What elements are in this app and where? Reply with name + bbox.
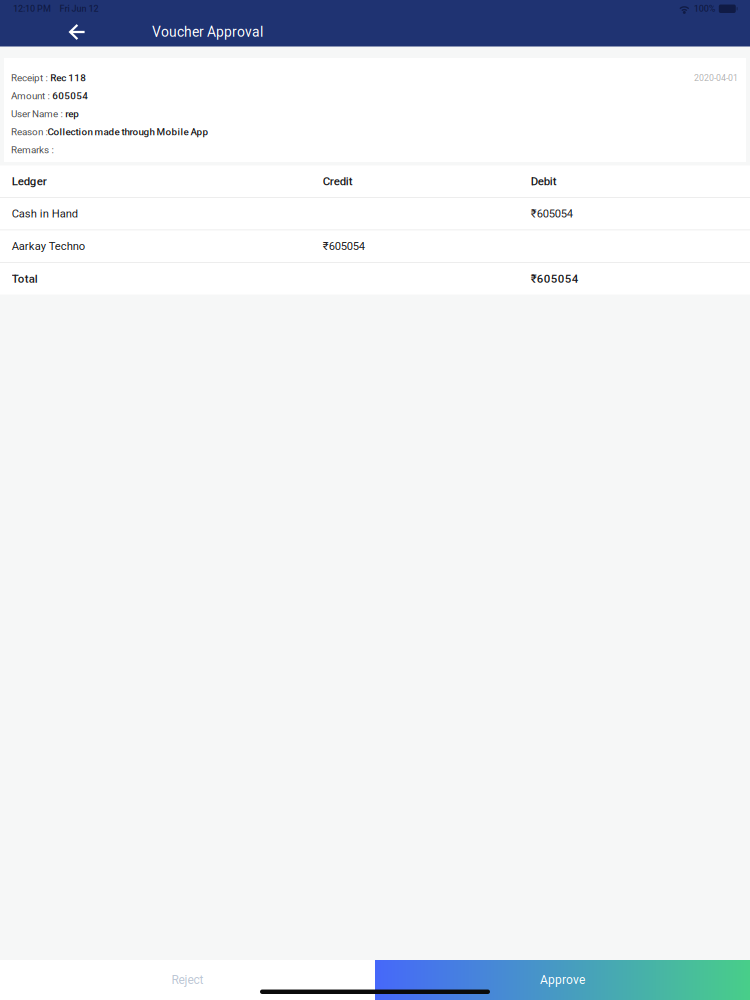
staticText: ₹605054	[323, 240, 365, 253]
staticText: :	[45, 72, 47, 84]
staticText: Credit	[323, 174, 353, 188]
staticText: ₹605054	[531, 272, 579, 285]
staticText: Fri Jun 12	[59, 3, 98, 14]
staticText: Total	[12, 272, 38, 285]
staticText: 100%	[694, 3, 716, 14]
staticText: User Name	[11, 108, 58, 120]
button[interactable]: Back	[55, 17, 99, 46]
staticText: Approve	[540, 973, 585, 987]
staticText: Debit	[531, 174, 557, 188]
staticText: :	[45, 126, 47, 138]
staticText: Amount	[11, 90, 45, 102]
staticText: 12:10 PM	[13, 3, 51, 14]
staticText: ₹605054	[531, 207, 573, 220]
staticText: Ledger	[12, 174, 47, 188]
staticText: Reason	[11, 126, 43, 138]
staticText: :	[60, 108, 62, 120]
staticText: 605054	[52, 90, 88, 102]
staticText: Rec 118	[50, 72, 86, 84]
staticText: 2020-04-01	[694, 73, 738, 83]
staticText: Remarks	[11, 144, 49, 156]
button[interactable]: Approve	[375, 960, 750, 1000]
button[interactable]: Reject	[0, 960, 375, 1000]
staticText: rep	[65, 108, 79, 120]
staticText: Reject	[171, 973, 203, 987]
staticText: :	[47, 90, 49, 102]
staticText: :	[51, 144, 53, 156]
staticText: Collection made through Mobile App	[47, 126, 208, 138]
staticText: Receipt	[11, 72, 43, 84]
staticText: Voucher Approval	[152, 24, 263, 40]
staticText: Cash in Hand	[12, 207, 78, 220]
staticText: Aarkay Techno	[12, 240, 85, 253]
